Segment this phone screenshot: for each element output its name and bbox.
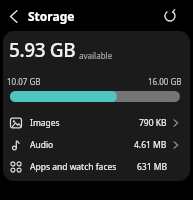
staticText: Images bbox=[30, 117, 60, 129]
button[interactable] bbox=[155, 1, 185, 31]
staticText: 16.00 GB bbox=[148, 76, 182, 87]
button[interactable]: Images bbox=[3, 112, 190, 134]
staticText: Storage bbox=[28, 8, 75, 24]
button[interactable] bbox=[0, 2, 28, 30]
staticText: 5.93 GB bbox=[9, 37, 76, 63]
staticText: 10.07 GB bbox=[7, 76, 41, 87]
staticText: Apps and watch faces bbox=[30, 161, 117, 173]
staticText: 4.61 MB bbox=[134, 139, 167, 151]
staticText: 631 MB bbox=[137, 161, 168, 173]
staticText: Audio bbox=[30, 139, 54, 151]
staticText: 790 KB bbox=[139, 117, 167, 129]
button[interactable]: Apps and watch faces bbox=[3, 156, 190, 178]
staticText: available bbox=[79, 50, 113, 61]
button[interactable]: Audio bbox=[3, 134, 190, 156]
